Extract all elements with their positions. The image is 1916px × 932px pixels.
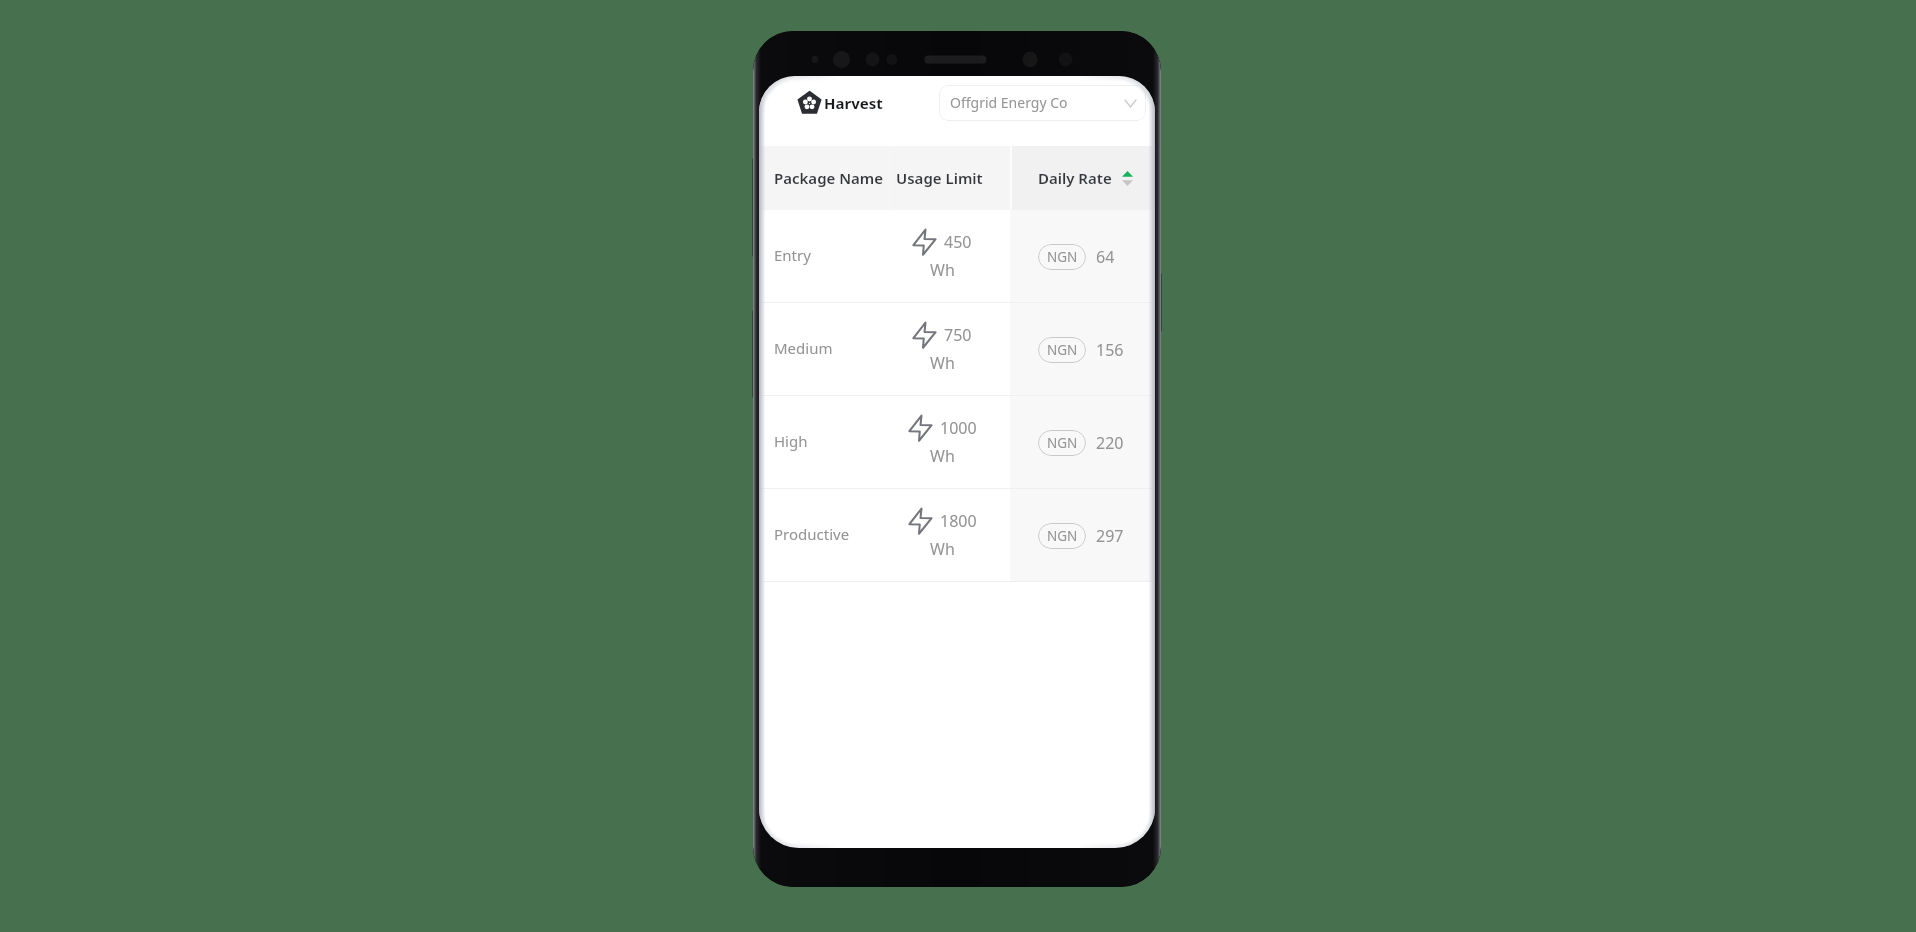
staticText: Wh [930,259,955,281]
button[interactable]: Productive [759,489,1155,582]
staticText: NGN [1047,527,1078,545]
staticText: Wh [930,445,955,467]
staticText: 1000 [940,417,977,439]
staticText: Usage Limit [896,168,983,188]
other: Harvest [798,91,821,114]
staticText: NGN [1047,248,1078,266]
button[interactable]: Entry [759,210,1155,303]
button[interactable]: High [759,396,1155,489]
button[interactable]: Daily Rate [1010,146,1155,210]
staticText: Wh [930,352,955,374]
staticText: 220 [1096,432,1124,454]
staticText: 297 [1096,525,1124,547]
other: Expand [1125,100,1136,107]
staticText: Wh [930,538,955,560]
button[interactable]: Harvest [798,91,883,114]
staticText: Productive [774,524,850,544]
staticText: Package Name [774,168,884,188]
staticText: Medium [774,338,833,358]
button[interactable]: Package Name [759,146,1010,210]
staticText: NGN [1047,434,1078,452]
staticText: NGN [1047,341,1078,359]
staticText: Harvest [824,93,883,113]
staticText: 156 [1096,339,1124,361]
button[interactable]: Medium [759,303,1155,396]
staticText: Offgrid Energy Co [950,93,1068,112]
staticText: 64 [1096,246,1115,268]
other: Sort [1122,171,1133,186]
staticText: High [774,431,808,451]
staticText: Daily Rate [1038,168,1112,188]
button[interactable]: Offgrid Energy Co [939,85,1146,121]
staticText: Entry [774,245,811,265]
staticText: 750 [944,324,972,346]
staticText: 450 [944,231,972,253]
staticText: 1800 [940,510,977,532]
